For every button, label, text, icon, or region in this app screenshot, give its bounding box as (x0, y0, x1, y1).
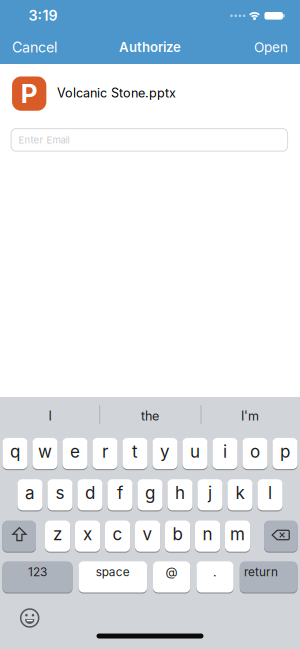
staticText: z (53, 524, 62, 544)
staticText: 3:19 (28, 7, 57, 24)
staticText: t (132, 441, 138, 462)
button[interactable]: Enter Email (11, 129, 288, 151)
button[interactable]: u (182, 437, 208, 470)
staticText: k (235, 482, 244, 503)
staticText: e (70, 441, 80, 462)
staticText: d (85, 482, 95, 503)
button[interactable]: x (75, 520, 100, 552)
staticText: r (102, 441, 108, 462)
button[interactable]: a (17, 479, 43, 511)
button[interactable]: Open (208, 36, 288, 58)
button[interactable]: return (240, 561, 297, 593)
button[interactable]: r (92, 437, 118, 470)
staticText: p (280, 441, 290, 462)
staticText: j (208, 482, 212, 503)
button[interactable]: f (107, 479, 133, 511)
staticText: b (173, 524, 183, 544)
button[interactable] (19, 607, 41, 629)
staticText: s (55, 482, 64, 503)
button[interactable]: i (212, 437, 238, 470)
button[interactable]: b (165, 520, 190, 552)
staticText: Cancel (12, 39, 57, 56)
button[interactable]: the (120, 401, 180, 431)
button[interactable]: . (196, 561, 234, 593)
staticText: Open (254, 39, 288, 56)
staticText: w (38, 441, 52, 462)
staticText: . (213, 564, 217, 579)
button[interactable]: v (135, 520, 160, 552)
staticText: c (113, 524, 123, 544)
button[interactable]: c (105, 520, 130, 552)
button[interactable]: p (272, 437, 298, 470)
staticText: P (21, 78, 38, 109)
button[interactable]: j (197, 479, 223, 511)
staticText: f (117, 482, 123, 503)
button[interactable]: h (167, 479, 193, 511)
button[interactable]: Cancel (12, 36, 92, 58)
staticText: o (250, 441, 260, 462)
button[interactable]: I (20, 401, 80, 431)
button[interactable] (2, 520, 36, 552)
staticText: space (96, 565, 130, 579)
staticText: l (268, 482, 272, 503)
staticText: Enter Email (19, 134, 70, 146)
button[interactable]: m (225, 520, 250, 552)
button[interactable]: I'm (220, 401, 280, 431)
button[interactable]: q (2, 437, 28, 470)
button[interactable] (264, 520, 298, 552)
staticText: y (160, 441, 170, 462)
staticText: 123 (28, 565, 47, 579)
staticText: I (48, 408, 51, 424)
button[interactable]: l (257, 479, 283, 511)
staticText: i (223, 441, 227, 462)
staticText: the (141, 408, 159, 424)
button[interactable]: t (122, 437, 148, 470)
staticText: x (83, 524, 92, 544)
button[interactable]: k (227, 479, 253, 511)
button[interactable]: z (45, 520, 70, 552)
button[interactable]: e (62, 437, 88, 470)
staticText: return (244, 565, 278, 579)
button[interactable]: space (78, 561, 147, 593)
staticText: v (143, 524, 153, 544)
button[interactable]: w (32, 437, 58, 470)
staticText: Authorize (119, 39, 181, 55)
staticText: Volcanic Stone.pptx (57, 85, 176, 101)
button[interactable]: s (47, 479, 73, 511)
staticText: I'm (241, 408, 259, 424)
staticText: n (203, 524, 213, 544)
button[interactable]: d (77, 479, 103, 511)
staticText: m (230, 524, 245, 544)
staticText: @ (166, 564, 178, 579)
button[interactable]: g (137, 479, 163, 511)
button[interactable]: @ (153, 561, 190, 593)
button[interactable]: y (152, 437, 178, 470)
button[interactable]: 123 (2, 561, 72, 593)
staticText: q (10, 441, 20, 462)
staticText: g (145, 482, 155, 503)
staticText: u (190, 441, 200, 462)
button[interactable]: n (195, 520, 220, 552)
button[interactable]: o (242, 437, 268, 470)
staticText: a (25, 482, 35, 503)
staticText: h (175, 482, 185, 503)
